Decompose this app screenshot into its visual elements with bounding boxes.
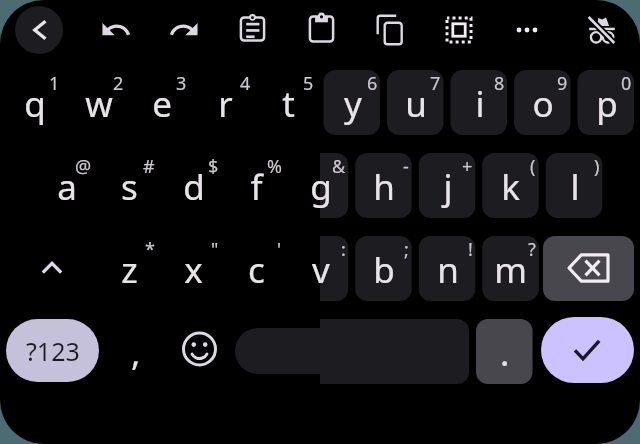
staticText: . xyxy=(500,329,510,377)
staticText: t xyxy=(282,80,295,128)
staticText: ' xyxy=(277,237,282,262)
staticText: @ xyxy=(75,154,92,179)
staticText: e xyxy=(152,80,172,128)
button[interactable]: r xyxy=(197,70,254,135)
button[interactable]: p xyxy=(578,70,635,135)
staticText: " xyxy=(211,237,219,262)
button[interactable]: n xyxy=(419,236,476,301)
button[interactable]: h xyxy=(355,153,412,218)
staticText: i xyxy=(475,80,485,128)
button[interactable]: f xyxy=(228,153,285,218)
button[interactable]: q xyxy=(6,70,63,135)
staticText: 5 xyxy=(303,71,314,96)
button[interactable]: m xyxy=(482,236,539,301)
staticText: & xyxy=(332,154,346,179)
button[interactable]: o xyxy=(514,70,571,135)
staticText: m xyxy=(494,246,527,294)
button[interactable]: b xyxy=(355,236,412,301)
staticText: r xyxy=(218,80,233,128)
button[interactable]: c xyxy=(228,236,285,301)
staticText: l xyxy=(570,163,580,211)
staticText: 9 xyxy=(557,71,568,96)
staticText: ) xyxy=(594,154,600,179)
button[interactable]: Delete xyxy=(543,236,634,301)
button[interactable]: Back xyxy=(15,6,63,54)
staticText: - xyxy=(403,154,409,179)
staticText: 2 xyxy=(113,71,124,96)
staticText: v xyxy=(312,246,330,294)
button[interactable]: , xyxy=(107,319,164,384)
button[interactable]: Shift xyxy=(6,236,98,301)
staticText: + xyxy=(462,154,473,179)
button[interactable]: Redo xyxy=(160,6,208,54)
staticText: y xyxy=(344,80,362,128)
button[interactable]: Enter xyxy=(541,317,634,383)
button[interactable]: Emoji xyxy=(171,319,228,384)
button[interactable]: Select all xyxy=(435,6,483,54)
button[interactable]: a xyxy=(38,153,95,218)
staticText: * xyxy=(145,237,155,262)
staticText: 0 xyxy=(621,71,632,96)
button[interactable]: g xyxy=(292,153,349,218)
button[interactable]: k xyxy=(482,153,539,218)
button[interactable]: j xyxy=(419,153,476,218)
button[interactable]: l xyxy=(546,153,603,218)
button[interactable]: Undo xyxy=(92,6,140,54)
staticText: 8 xyxy=(494,71,505,96)
button[interactable]: Incognito off xyxy=(578,6,626,54)
staticText: f xyxy=(250,163,263,211)
staticText: 1 xyxy=(49,71,60,96)
button[interactable]: u xyxy=(387,70,444,135)
staticText: ! xyxy=(468,237,473,262)
staticText: z xyxy=(121,246,138,294)
button[interactable]: . xyxy=(476,319,533,384)
staticText: : xyxy=(341,237,346,262)
staticText: b xyxy=(373,246,395,294)
staticText: 4 xyxy=(240,71,251,96)
staticText: ( xyxy=(530,154,536,179)
button[interactable]: x xyxy=(165,236,222,301)
staticText: s xyxy=(121,163,138,211)
staticText: $ xyxy=(208,154,219,179)
button[interactable]: s xyxy=(101,153,158,218)
button[interactable]: v xyxy=(292,236,349,301)
button[interactable]: e xyxy=(133,70,190,135)
staticText: k xyxy=(501,163,520,211)
staticText: 6 xyxy=(367,71,378,96)
staticText: % xyxy=(267,154,282,179)
button[interactable]: More options xyxy=(503,6,551,54)
button[interactable]: y xyxy=(324,70,381,135)
button[interactable]: d xyxy=(165,153,222,218)
staticText: ; xyxy=(404,237,409,262)
staticText: d xyxy=(183,163,205,211)
staticText: w xyxy=(85,80,113,128)
button[interactable]: Space xyxy=(236,319,469,384)
staticText: n xyxy=(437,246,459,294)
staticText: 3 xyxy=(176,71,187,96)
staticText: j xyxy=(443,163,453,211)
button[interactable]: t xyxy=(260,70,317,135)
staticText: q xyxy=(24,80,46,128)
button[interactable]: Paste xyxy=(228,6,276,54)
button[interactable]: w xyxy=(70,70,127,135)
staticText: , xyxy=(131,329,141,377)
button[interactable]: Clipboard xyxy=(297,6,345,54)
staticText: p xyxy=(596,80,618,128)
staticText: x xyxy=(184,246,203,294)
staticText: 7 xyxy=(430,71,441,96)
staticText: ?123 xyxy=(26,334,80,368)
button[interactable]: Copy xyxy=(365,6,413,54)
staticText: # xyxy=(143,154,155,179)
staticText: o xyxy=(532,80,554,128)
button[interactable]: ?123 xyxy=(6,319,99,382)
staticText: c xyxy=(248,246,265,294)
button[interactable]: i xyxy=(451,70,508,135)
button[interactable]: z xyxy=(101,236,158,301)
staticText: ? xyxy=(528,237,536,262)
staticText: a xyxy=(57,163,77,211)
staticText: g xyxy=(310,163,332,211)
staticText: h xyxy=(373,163,395,211)
staticText: u xyxy=(405,80,427,128)
